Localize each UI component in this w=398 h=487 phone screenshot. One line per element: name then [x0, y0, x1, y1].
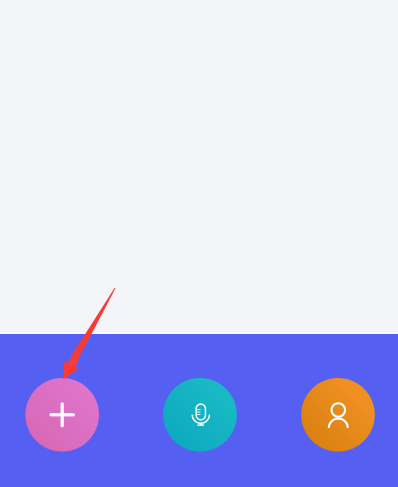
button[interactable]: Record voice note: [163, 378, 237, 452]
button[interactable]: Profile: [301, 378, 375, 452]
button[interactable]: Add: [25, 378, 99, 452]
